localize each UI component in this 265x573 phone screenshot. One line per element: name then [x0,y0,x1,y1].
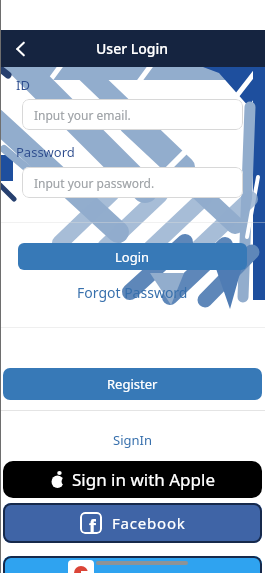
button[interactable]: Input your password. [22,167,243,198]
button[interactable]: Register [3,368,262,400]
staticText: User Login [96,39,169,58]
staticText: Input your email. [34,107,131,123]
button[interactable]: f [3,503,262,543]
button[interactable]: SignIn [113,431,152,449]
staticText: Password [16,143,75,161]
staticText: Facebook [112,513,186,533]
staticText: ID [16,76,30,94]
button[interactable]: Input your email. [22,99,243,130]
staticText: Login [115,248,150,266]
staticText: Sign in with Apple [72,468,215,491]
button[interactable] [0,30,40,67]
button[interactable]: Login [18,243,247,270]
staticText: Register [107,375,158,393]
button[interactable]: Forgot Password [77,283,188,302]
staticText: Input your password. [34,175,155,191]
button[interactable]: Sign in with Apple [3,461,262,498]
staticText: f [89,514,96,534]
button[interactable] [3,556,262,573]
